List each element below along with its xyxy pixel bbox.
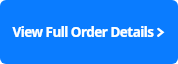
button[interactable]: View Full Order Details xyxy=(0,0,178,64)
staticText: View Full Order Details xyxy=(12,23,154,41)
